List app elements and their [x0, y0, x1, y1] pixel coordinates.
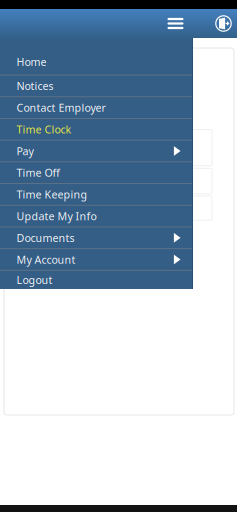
staticText: Update My Info	[16, 209, 96, 223]
staticText: My Account	[16, 252, 75, 267]
button[interactable]: Log out	[210, 10, 236, 36]
button[interactable]: Home	[0, 38, 192, 75]
button[interactable]: Time Off	[0, 162, 192, 184]
staticText: Contact Employer	[16, 100, 105, 115]
button[interactable]: My Account	[0, 249, 192, 271]
staticText: Home	[16, 55, 46, 69]
button[interactable]: Logout	[0, 271, 192, 289]
staticText: Time Keeping	[16, 187, 87, 201]
button[interactable]: Update My Info	[0, 206, 192, 227]
staticText: Time Off	[16, 166, 59, 180]
staticText: Pay	[16, 144, 33, 158]
staticText: Time Clock	[16, 122, 71, 136]
button[interactable]: Notices	[0, 75, 192, 97]
button[interactable]: Pay	[0, 141, 192, 162]
button[interactable]: Documents	[0, 227, 192, 249]
button[interactable]: Time Clock	[0, 119, 192, 141]
staticText: Documents	[16, 231, 74, 245]
button[interactable]: Time Keeping	[0, 184, 192, 206]
staticText: Logout	[16, 273, 52, 287]
staticText: Notices	[16, 79, 53, 93]
button[interactable]: Menu	[160, 10, 190, 37]
button[interactable]: Contact Employer	[0, 97, 192, 119]
